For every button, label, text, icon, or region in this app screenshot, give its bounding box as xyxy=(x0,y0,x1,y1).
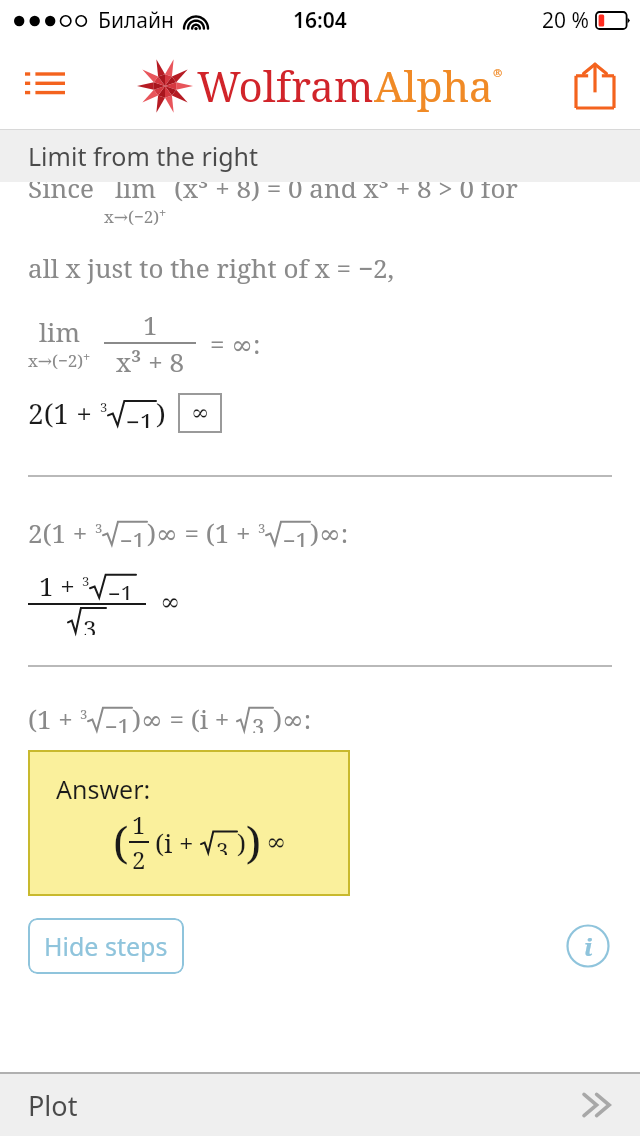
staticText: ) xyxy=(237,825,246,860)
staticText: (x³ + 8) = 0 and x³ + 8 > 0 for xyxy=(174,170,518,205)
staticText: Plot xyxy=(28,1087,78,1124)
staticText: lim xyxy=(115,170,156,205)
staticText: 2 xyxy=(132,843,146,876)
button[interactable]: Share xyxy=(564,54,626,116)
staticText: ∞ xyxy=(160,588,180,616)
staticText: i xyxy=(584,930,593,963)
staticText: 3 xyxy=(80,705,88,720)
staticText: 3 xyxy=(100,398,108,414)
staticText: ∞ xyxy=(266,828,286,856)
staticText: 2(1 + xyxy=(28,394,100,432)
staticText: Билайн xyxy=(98,6,174,35)
button[interactable]: Info xyxy=(564,922,612,970)
staticText: Hide steps xyxy=(44,929,168,963)
staticText: Since xyxy=(28,170,94,205)
staticText: 1 xyxy=(132,808,146,841)
staticText: Answer: xyxy=(56,772,151,806)
button[interactable]: Plot xyxy=(0,1074,640,1136)
staticText: x→(−2)⁺ xyxy=(28,349,90,372)
staticText: all x just to the right of x = −2, xyxy=(28,250,395,285)
staticText: = ∞: xyxy=(210,326,261,361)
staticText: −1 xyxy=(126,405,154,428)
staticText: −1 xyxy=(120,525,146,547)
staticText: 3 xyxy=(216,835,229,855)
staticText: 3 xyxy=(83,612,97,635)
staticText: (1 + xyxy=(28,701,80,736)
staticText: 3 xyxy=(82,572,90,587)
staticText: 3 xyxy=(95,519,103,534)
staticText: 1 xyxy=(143,307,158,342)
staticText: Limit from the right xyxy=(28,139,259,173)
button[interactable]: Limit from the right xyxy=(0,130,640,182)
staticText: 20 % xyxy=(542,6,589,35)
staticText: −1 xyxy=(105,711,131,733)
staticText: ) xyxy=(246,812,262,872)
staticText: x→(−2)⁺ xyxy=(104,205,166,228)
staticText: ) xyxy=(156,394,166,432)
staticText: )∞ = (i + xyxy=(132,701,237,736)
button[interactable]: Menu xyxy=(14,54,76,116)
button[interactable]: Hide steps xyxy=(28,918,184,974)
staticText: ® xyxy=(493,65,503,80)
staticText: 1 + xyxy=(39,568,82,603)
staticText: Wolfram xyxy=(197,57,374,114)
staticText: (i + xyxy=(155,825,201,860)
staticText: 3 xyxy=(252,711,265,733)
staticText: x³ + 8 xyxy=(116,344,185,379)
staticText: Alpha xyxy=(374,57,493,114)
staticText: −1 xyxy=(283,525,309,547)
staticText: lim xyxy=(39,314,80,349)
staticText: 3 xyxy=(258,519,266,534)
staticText: 2(1 + xyxy=(28,515,95,550)
staticText: )∞: xyxy=(310,515,349,550)
staticText: )∞: xyxy=(273,701,312,736)
staticText: ∞ xyxy=(191,400,210,426)
staticText: )∞ = (1 + xyxy=(147,515,258,550)
staticText: 16:04 xyxy=(293,6,347,35)
staticText: ( xyxy=(113,812,129,872)
staticText: −1 xyxy=(108,578,134,600)
